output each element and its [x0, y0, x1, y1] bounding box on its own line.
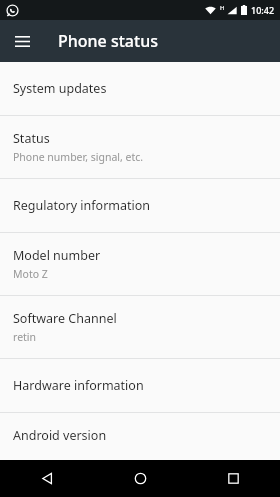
staticText: Phone status	[58, 30, 158, 52]
button[interactable]: Recent apps	[187, 460, 280, 497]
button[interactable]: Model number	[0, 233, 280, 295]
staticText: 10:42	[251, 4, 275, 16]
staticText: Phone number, signal, etc.	[13, 150, 144, 164]
staticText: retin	[13, 330, 37, 344]
button[interactable]: Open navigation menu	[8, 27, 36, 55]
staticText: Moto Z	[13, 267, 48, 281]
button[interactable]: Home	[94, 460, 187, 497]
button[interactable]: Software Channel	[0, 296, 280, 358]
staticText: System updates	[13, 80, 107, 97]
button[interactable]: System updates	[0, 62, 280, 115]
button[interactable]: Back	[0, 460, 94, 497]
button[interactable]: Android version	[0, 413, 280, 460]
staticText: Android version	[13, 427, 107, 444]
staticText: Model number	[13, 247, 101, 264]
staticText: Software Channel	[13, 310, 117, 327]
staticText: Status	[13, 130, 50, 147]
button[interactable]: Regulatory information	[0, 179, 280, 232]
button[interactable]: Hardware information	[0, 359, 280, 412]
staticText: Regulatory information	[13, 197, 151, 214]
button[interactable]: Status	[0, 116, 280, 178]
staticText: H	[220, 4, 225, 12]
staticText: Hardware information	[13, 377, 144, 394]
